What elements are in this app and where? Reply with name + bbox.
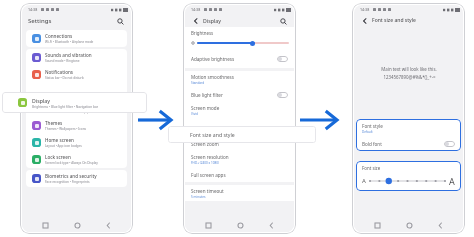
button[interactable]: Home xyxy=(69,219,85,232)
button[interactable]: Biometrics and security xyxy=(32,170,121,187)
staticText: Layout • App icon badges xyxy=(45,144,82,148)
staticText: Font size and style xyxy=(190,131,235,138)
button[interactable]: Toggle xyxy=(277,56,288,62)
button[interactable]: Home xyxy=(401,219,417,232)
staticText: Standard xyxy=(191,81,205,85)
staticText: Full screen apps xyxy=(191,172,226,178)
button[interactable]: Lock screen xyxy=(32,151,121,168)
staticText: Blue light filter xyxy=(191,92,223,98)
button[interactable]: Toggle xyxy=(277,92,288,98)
button[interactable]: Back xyxy=(263,219,279,232)
staticText: FHD+ (2400 x 1080) xyxy=(191,161,219,165)
button[interactable]: Wallpaper xyxy=(32,100,121,117)
button[interactable]: Adaptive brightness xyxy=(191,51,288,66)
staticText: Brightness • Blue light filter • Navigat… xyxy=(32,105,99,109)
staticText: Screen timeout xyxy=(191,188,224,194)
staticText: A xyxy=(449,175,455,187)
button[interactable]: Blue light filter xyxy=(191,87,288,102)
staticText: Font size xyxy=(362,165,381,171)
staticText: Display xyxy=(203,17,222,24)
staticText: 14:38 xyxy=(28,7,38,12)
staticText: Wi-Fi • Bluetooth • Airplane mode xyxy=(45,40,94,44)
staticText: Settings xyxy=(28,17,52,25)
button[interactable]: Toggle xyxy=(444,141,455,147)
staticText: Screen lock type • Always On Display xyxy=(45,161,98,165)
staticText: Face recognition • Fingerprints xyxy=(45,180,90,184)
button[interactable]: Font style xyxy=(362,123,461,134)
staticText: Screen zoom xyxy=(191,141,219,147)
button[interactable]: Display xyxy=(18,92,131,113)
staticText: Font style xyxy=(362,123,383,129)
button[interactable]: Bold font xyxy=(362,137,455,151)
button[interactable]: Full screen apps xyxy=(191,167,288,182)
button[interactable]: Screen zoom xyxy=(191,136,288,151)
staticText: Home screen xyxy=(45,137,74,143)
staticText: 14:38 xyxy=(191,7,201,12)
staticText: 14:38 xyxy=(360,7,370,12)
button[interactable]: Recents xyxy=(369,219,385,232)
button[interactable]: Screen resolution xyxy=(191,151,288,167)
staticText: Motion smoothness xyxy=(191,74,234,80)
button[interactable]: Search xyxy=(115,16,125,26)
staticText: Display xyxy=(32,97,51,104)
staticText: Default xyxy=(362,130,373,134)
button[interactable]: Notifications xyxy=(32,66,121,83)
staticText: Screen mode xyxy=(191,105,220,111)
button[interactable]: Motion smoothness xyxy=(191,71,288,87)
staticText: Status bar • Do not disturb xyxy=(45,76,84,80)
staticText: Home and lock screen wallpaper xyxy=(45,110,93,114)
button[interactable]: Font size and style xyxy=(190,126,316,143)
staticText: Notifications xyxy=(45,69,74,75)
button[interactable]: Back xyxy=(191,16,200,25)
staticText: Bold font xyxy=(362,141,444,147)
button[interactable]: Sounds and vibration xyxy=(32,49,121,66)
staticText: Themes • Wallpapers • Icons xyxy=(45,127,87,131)
staticText: 5 minutes xyxy=(191,195,206,199)
staticText: Sound mode • Ringtone xyxy=(45,59,80,63)
staticText: 1234567890@#%&*()_+-= xyxy=(383,74,436,80)
button[interactable]: Font size slider xyxy=(362,175,455,187)
staticText: Adaptive brightness xyxy=(191,56,235,62)
button[interactable]: Screen timeout xyxy=(191,185,288,201)
button[interactable]: Back xyxy=(360,16,369,25)
staticText: Biometrics and security xyxy=(45,173,97,179)
staticText: A xyxy=(362,177,366,185)
button[interactable]: Themes xyxy=(32,117,121,134)
button[interactable]: Back xyxy=(432,219,448,232)
staticText: Connections xyxy=(45,33,73,39)
staticText: Lock screen xyxy=(45,154,71,160)
staticText: Sounds and vibration xyxy=(45,52,92,58)
staticText: Themes xyxy=(45,120,63,126)
staticText: Wallpaper xyxy=(45,103,68,109)
staticText: Vivid xyxy=(191,112,198,116)
button[interactable]: Recents xyxy=(37,219,53,232)
button[interactable]: Home xyxy=(232,219,248,232)
button[interactable]: Home screen xyxy=(32,134,121,151)
button[interactable]: Recents xyxy=(200,219,216,232)
button[interactable]: Back xyxy=(100,219,116,232)
staticText: Main text will look like this. xyxy=(381,66,437,72)
staticText: Brightness xyxy=(191,30,214,36)
staticText: Font size and style xyxy=(372,17,416,24)
staticText: Screen resolution xyxy=(191,154,229,160)
button[interactable]: Brightness slider xyxy=(250,41,255,46)
button[interactable]: Connections xyxy=(32,30,121,47)
button[interactable]: Screen mode xyxy=(191,102,288,118)
button[interactable]: Search xyxy=(278,16,288,26)
